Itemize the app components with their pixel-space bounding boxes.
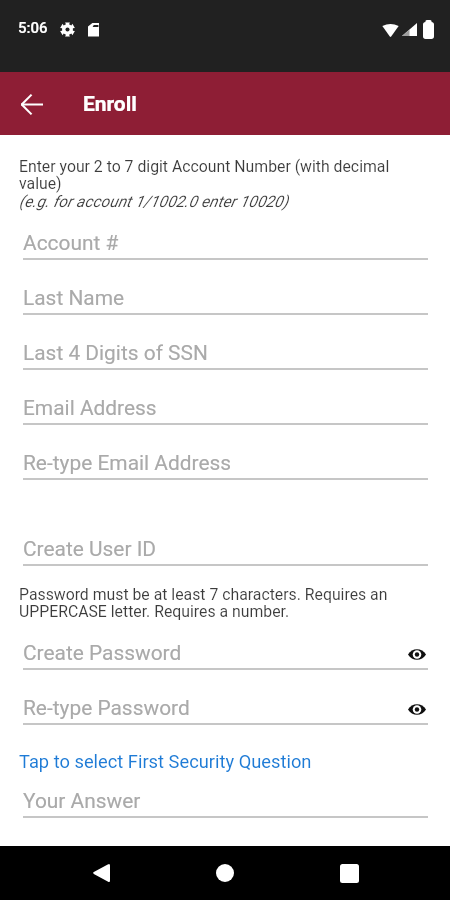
button[interactable]: Show password xyxy=(403,640,431,668)
staticText: 5:06 xyxy=(18,19,48,37)
button[interactable]: Last 4 Digits of SSN xyxy=(23,325,428,371)
button[interactable]: Show password xyxy=(403,695,431,723)
button[interactable]: Create Password xyxy=(23,625,428,671)
button[interactable]: Tap to select First Security Question xyxy=(19,751,312,772)
staticText: Enroll xyxy=(83,92,137,117)
staticText: Password must be at least 7 characters. … xyxy=(19,585,397,621)
button[interactable]: Account # xyxy=(23,215,428,261)
staticText: Last Name xyxy=(23,286,125,310)
staticText: Email Address xyxy=(23,396,157,420)
staticText: Last 4 Digits of SSN xyxy=(23,341,208,365)
button[interactable]: Home xyxy=(201,849,249,897)
button[interactable]: Back xyxy=(77,849,125,897)
staticText: Your Answer xyxy=(23,789,141,813)
button[interactable]: Back xyxy=(11,83,53,125)
staticText: Re-type Email Address xyxy=(23,451,232,475)
button[interactable]: Last Name xyxy=(23,270,428,316)
staticText: Create Password xyxy=(23,641,182,665)
staticText: Enter your 2 to 7 digit Account Number (… xyxy=(19,157,397,193)
button[interactable]: Your Answer xyxy=(23,773,428,819)
button[interactable]: Email Address xyxy=(23,380,428,426)
staticText: (e.g. for account 1/1002.0 enter 10020) xyxy=(19,192,289,211)
button[interactable]: Create User ID xyxy=(23,521,428,567)
staticText: Create User ID xyxy=(23,537,157,561)
staticText: Re-type Password xyxy=(23,696,190,720)
button[interactable]: Recents xyxy=(325,849,373,897)
button[interactable]: Re-type Email Address xyxy=(23,435,428,481)
staticText: Account # xyxy=(23,231,119,255)
button[interactable]: Re-type Password xyxy=(23,680,428,726)
